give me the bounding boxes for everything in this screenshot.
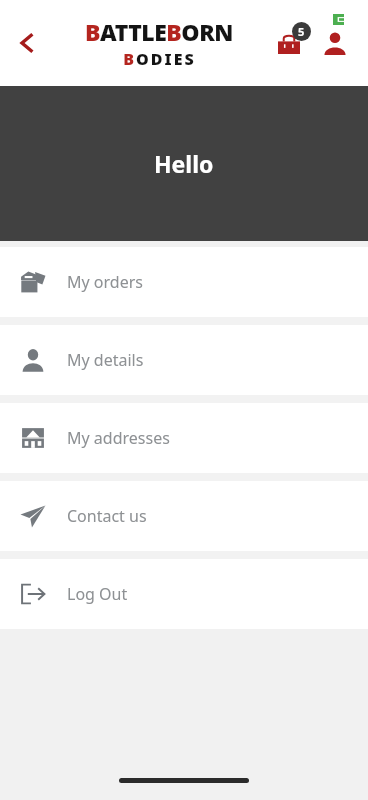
- staticText: My addresses: [67, 427, 170, 449]
- staticText: Log Out: [67, 583, 128, 605]
- button[interactable]: Log Out: [0, 559, 368, 629]
- staticText: BATTLEBORN: [85, 16, 233, 47]
- button[interactable]: My orders: [0, 247, 368, 317]
- button[interactable]: Contact us: [0, 481, 368, 551]
- button[interactable]: My details: [0, 325, 368, 395]
- staticText: My orders: [67, 271, 143, 293]
- button[interactable]: My addresses: [0, 403, 368, 473]
- staticText: BODIES: [123, 48, 196, 70]
- button[interactable]: Account: [312, 20, 358, 66]
- staticText: Contact us: [67, 505, 147, 527]
- button[interactable]: Back: [4, 19, 52, 67]
- staticText: 5: [298, 24, 305, 39]
- button[interactable]: Cart: [266, 20, 312, 66]
- staticText: My details: [67, 349, 144, 371]
- staticText: Hello: [154, 148, 214, 179]
